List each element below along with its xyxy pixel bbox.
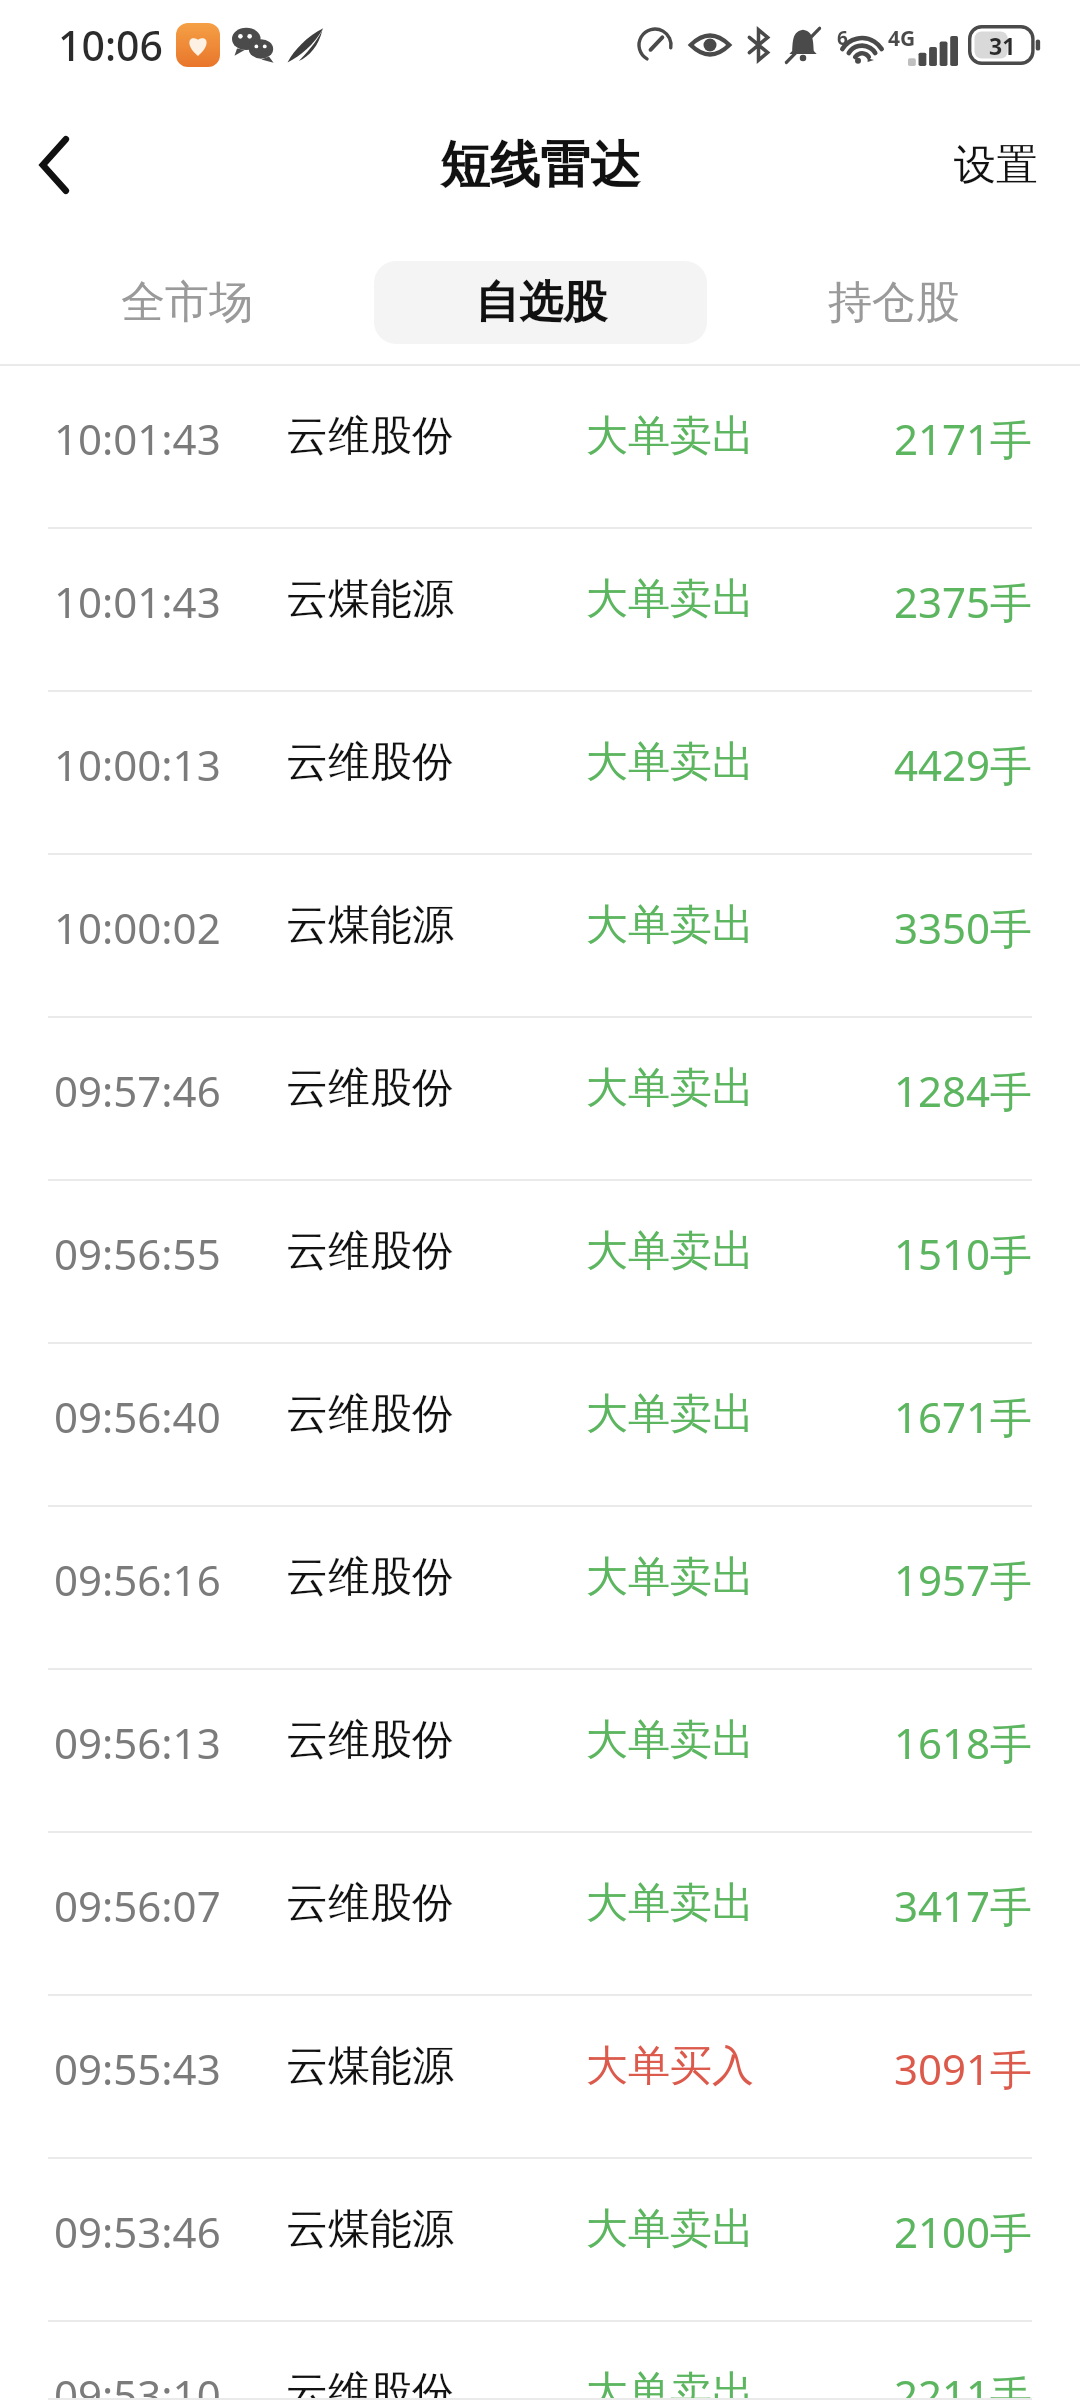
staticText: 大单卖出 [586, 573, 828, 626]
staticText: 云维股份 [286, 1877, 586, 1930]
button[interactable]: 09:53:10 [0, 2322, 1080, 2400]
button[interactable]: 09:56:07 [0, 1833, 1080, 1996]
button[interactable]: 10:01:43 [0, 366, 1080, 529]
staticText: 大单卖出 [586, 736, 828, 789]
button[interactable]: 09:56:40 [0, 1344, 1080, 1507]
staticText: 云维股份 [286, 1062, 586, 1115]
staticText: 2375手 [828, 573, 1032, 630]
staticText: 3350手 [828, 899, 1032, 956]
staticText: 10:00:13 [54, 736, 286, 793]
staticText: 云维股份 [286, 1225, 586, 1278]
staticText: 自选股 [475, 275, 607, 330]
staticText: 大单卖出 [586, 1062, 828, 1115]
staticText: 云维股份 [286, 1551, 586, 1604]
staticText: 大单卖出 [586, 1225, 828, 1278]
button[interactable]: 09:56:13 [0, 1670, 1080, 1833]
staticText: 4429手 [828, 736, 1032, 793]
staticText: 大单卖出 [586, 1877, 828, 1930]
staticText: 09:53:46 [54, 2203, 286, 2260]
staticText: 大单买入 [586, 2040, 828, 2093]
staticText: 云煤能源 [286, 899, 586, 952]
staticText: 大单卖出 [586, 899, 828, 952]
staticText: 10:06 [58, 17, 163, 73]
button[interactable]: 10:00:13 [0, 692, 1080, 855]
staticText: 4G [888, 24, 916, 53]
button[interactable]: 持仓股 [727, 261, 1060, 344]
staticText: 10:00:02 [54, 899, 286, 956]
staticText: 10:01:43 [54, 410, 286, 467]
staticText: 09:56:13 [54, 1714, 286, 1771]
staticText: 1284手 [828, 1062, 1032, 1119]
staticText: 31 [989, 30, 1016, 61]
button[interactable]: 09:56:55 [0, 1181, 1080, 1344]
staticText: 1671手 [828, 1388, 1032, 1445]
button[interactable]: 10:00:02 [0, 855, 1080, 1018]
staticText: 09:57:46 [54, 1062, 286, 1119]
button[interactable]: 全市场 [20, 261, 353, 344]
staticText: 云煤能源 [286, 2040, 586, 2093]
staticText: 09:53:10 [54, 2366, 286, 2400]
button[interactable]: 09:55:43 [0, 1996, 1080, 2159]
staticText: 2171手 [828, 410, 1032, 467]
staticText: 云维股份 [286, 410, 586, 463]
staticText: 1618手 [828, 1714, 1032, 1771]
button[interactable]: 09:57:46 [0, 1018, 1080, 1181]
staticText: 09:56:55 [54, 1225, 286, 1282]
staticText: 1510手 [828, 1225, 1032, 1282]
staticText: 2211手 [828, 2366, 1032, 2400]
staticText: 1957手 [828, 1551, 1032, 1608]
staticText: 10:01:43 [54, 573, 286, 630]
staticText: 云维股份 [286, 2366, 586, 2400]
staticText: 云煤能源 [286, 2203, 586, 2256]
staticText: 持仓股 [828, 275, 960, 330]
staticText: 大单卖出 [586, 1388, 828, 1441]
button[interactable]: 设置 [912, 110, 1080, 220]
staticText: 云维股份 [286, 1714, 586, 1767]
staticText: 3091手 [828, 2040, 1032, 2097]
staticText: 09:56:07 [54, 1877, 286, 1934]
staticText: 大单卖出 [586, 2366, 828, 2400]
staticText: 云维股份 [286, 1388, 586, 1441]
button[interactable]: 10:01:43 [0, 529, 1080, 692]
button[interactable]: 09:56:16 [0, 1507, 1080, 1670]
staticText: 云维股份 [286, 736, 586, 789]
staticText: 大单卖出 [586, 410, 828, 463]
staticText: 大单卖出 [586, 1714, 828, 1767]
staticText: 大单卖出 [586, 1551, 828, 1604]
staticText: 大单卖出 [586, 2203, 828, 2256]
staticText: 全市场 [121, 275, 253, 330]
button[interactable]: 自选股 [374, 261, 707, 344]
staticText: 短线雷达 [440, 134, 640, 197]
button[interactable]: 09:53:46 [0, 2159, 1080, 2322]
staticText: 09:55:43 [54, 2040, 286, 2097]
button[interactable]: 返回 [0, 110, 110, 220]
staticText: 09:56:16 [54, 1551, 286, 1608]
staticText: 3417手 [828, 1877, 1032, 1934]
staticText: 云煤能源 [286, 573, 586, 626]
staticText: 设置 [954, 139, 1038, 192]
staticText: 09:56:40 [54, 1388, 286, 1445]
staticText: 6 [837, 25, 848, 51]
staticText: 2100手 [828, 2203, 1032, 2260]
